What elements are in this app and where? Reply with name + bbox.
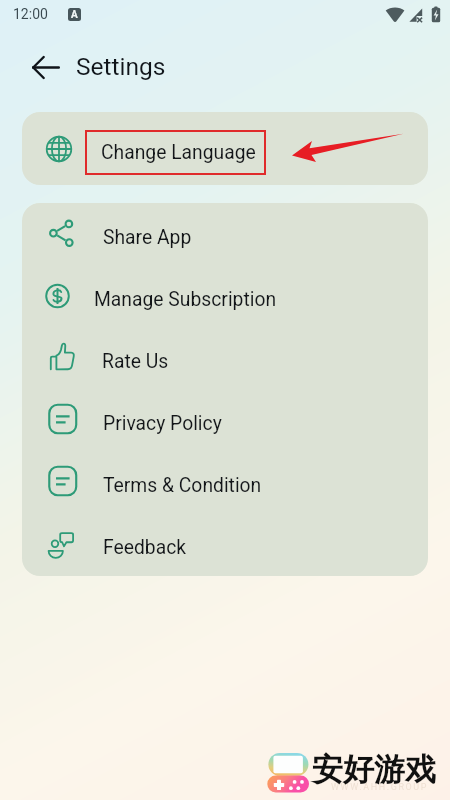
- staticText: Terms & Condition: [103, 474, 262, 497]
- staticText: 12:00: [13, 6, 48, 22]
- button[interactable]: Change Language: [22, 112, 428, 185]
- staticText: 安好游戏: [312, 750, 436, 789]
- staticText: Change Language: [101, 141, 256, 164]
- staticText: Manage Subscription: [94, 288, 277, 311]
- staticText: Settings: [76, 52, 166, 81]
- staticText: A: [71, 9, 78, 21]
- button[interactable]: Manage Subscription: [22, 265, 428, 327]
- button[interactable]: Terms & Condition: [22, 451, 428, 513]
- button[interactable]: Share App: [22, 203, 428, 265]
- staticText: Feedback: [103, 536, 187, 559]
- button[interactable]: Feedback: [22, 513, 428, 575]
- staticText: Share App: [103, 226, 192, 249]
- button[interactable]: Rate Us: [22, 327, 428, 389]
- staticText: Rate Us: [102, 350, 169, 373]
- button[interactable]: Privacy Policy: [22, 389, 428, 451]
- button[interactable]: Back: [26, 52, 65, 83]
- staticText: Privacy Policy: [103, 412, 222, 435]
- staticText: WWW.AHH.GROUP: [331, 782, 429, 793]
